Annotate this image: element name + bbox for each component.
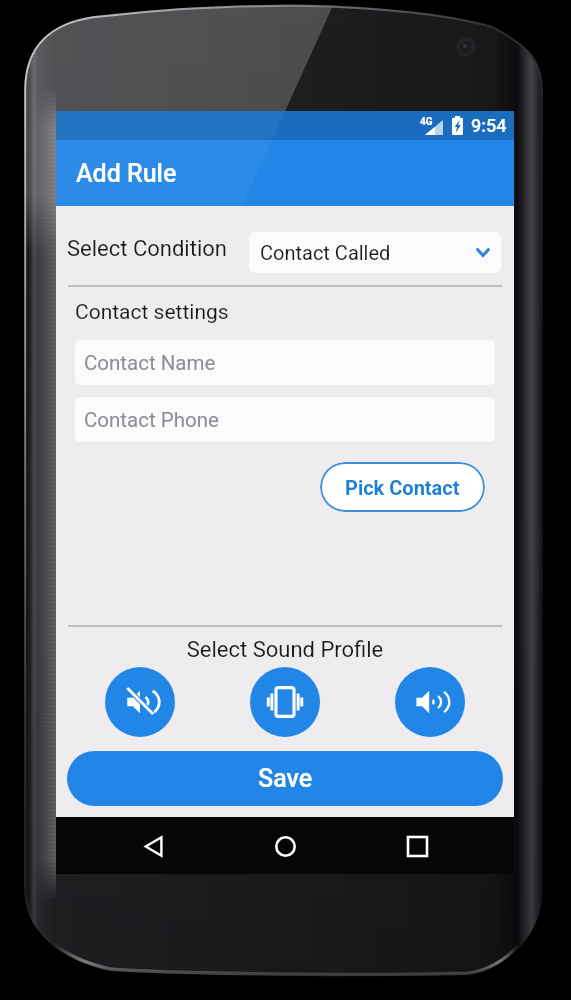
button[interactable]: Pick Contact [320,462,485,512]
staticText: Save [258,764,313,793]
staticText: 9:54 [471,115,507,136]
button[interactable]: Contact Called [249,232,501,273]
button[interactable]: Back [131,823,177,869]
staticText: Select Sound Profile [56,637,514,663]
staticText: Add Rule [76,159,177,188]
staticText: Contact Phone [84,408,219,432]
staticText: 4G [420,116,433,128]
staticText: Contact settings [75,300,229,325]
button[interactable]: Home [262,823,308,869]
staticText: Select Condition [67,236,227,262]
button[interactable]: Add Rule [56,140,514,206]
staticText: Contact Called [260,241,391,264]
button[interactable]: Save [67,751,503,806]
button[interactable]: Contact Name [75,340,495,385]
staticText: Contact Name [84,351,216,375]
staticText: Pick Contact [345,476,460,499]
button[interactable]: Recents [394,823,440,869]
button[interactable]: Vibrate [250,667,320,737]
button[interactable]: Silent [105,667,175,737]
button[interactable]: Contact Phone [75,397,495,442]
button[interactable]: Loud [395,667,465,737]
